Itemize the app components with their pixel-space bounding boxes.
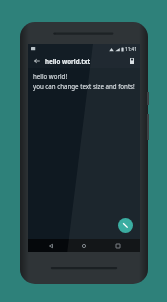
button[interactable]: Save [126, 55, 137, 66]
button[interactable]: Recents [107, 239, 129, 252]
staticText: hello world.txt [45, 57, 126, 65]
staticText: hello world! [33, 72, 68, 80]
button[interactable]: Back [40, 239, 62, 252]
button[interactable]: Edit [118, 218, 133, 233]
staticText: 11:41 [125, 46, 137, 52]
button[interactable]: Home [73, 239, 95, 252]
button[interactable]: Navigate up [31, 55, 42, 66]
staticText: you can change text size and fonts! [33, 82, 135, 90]
